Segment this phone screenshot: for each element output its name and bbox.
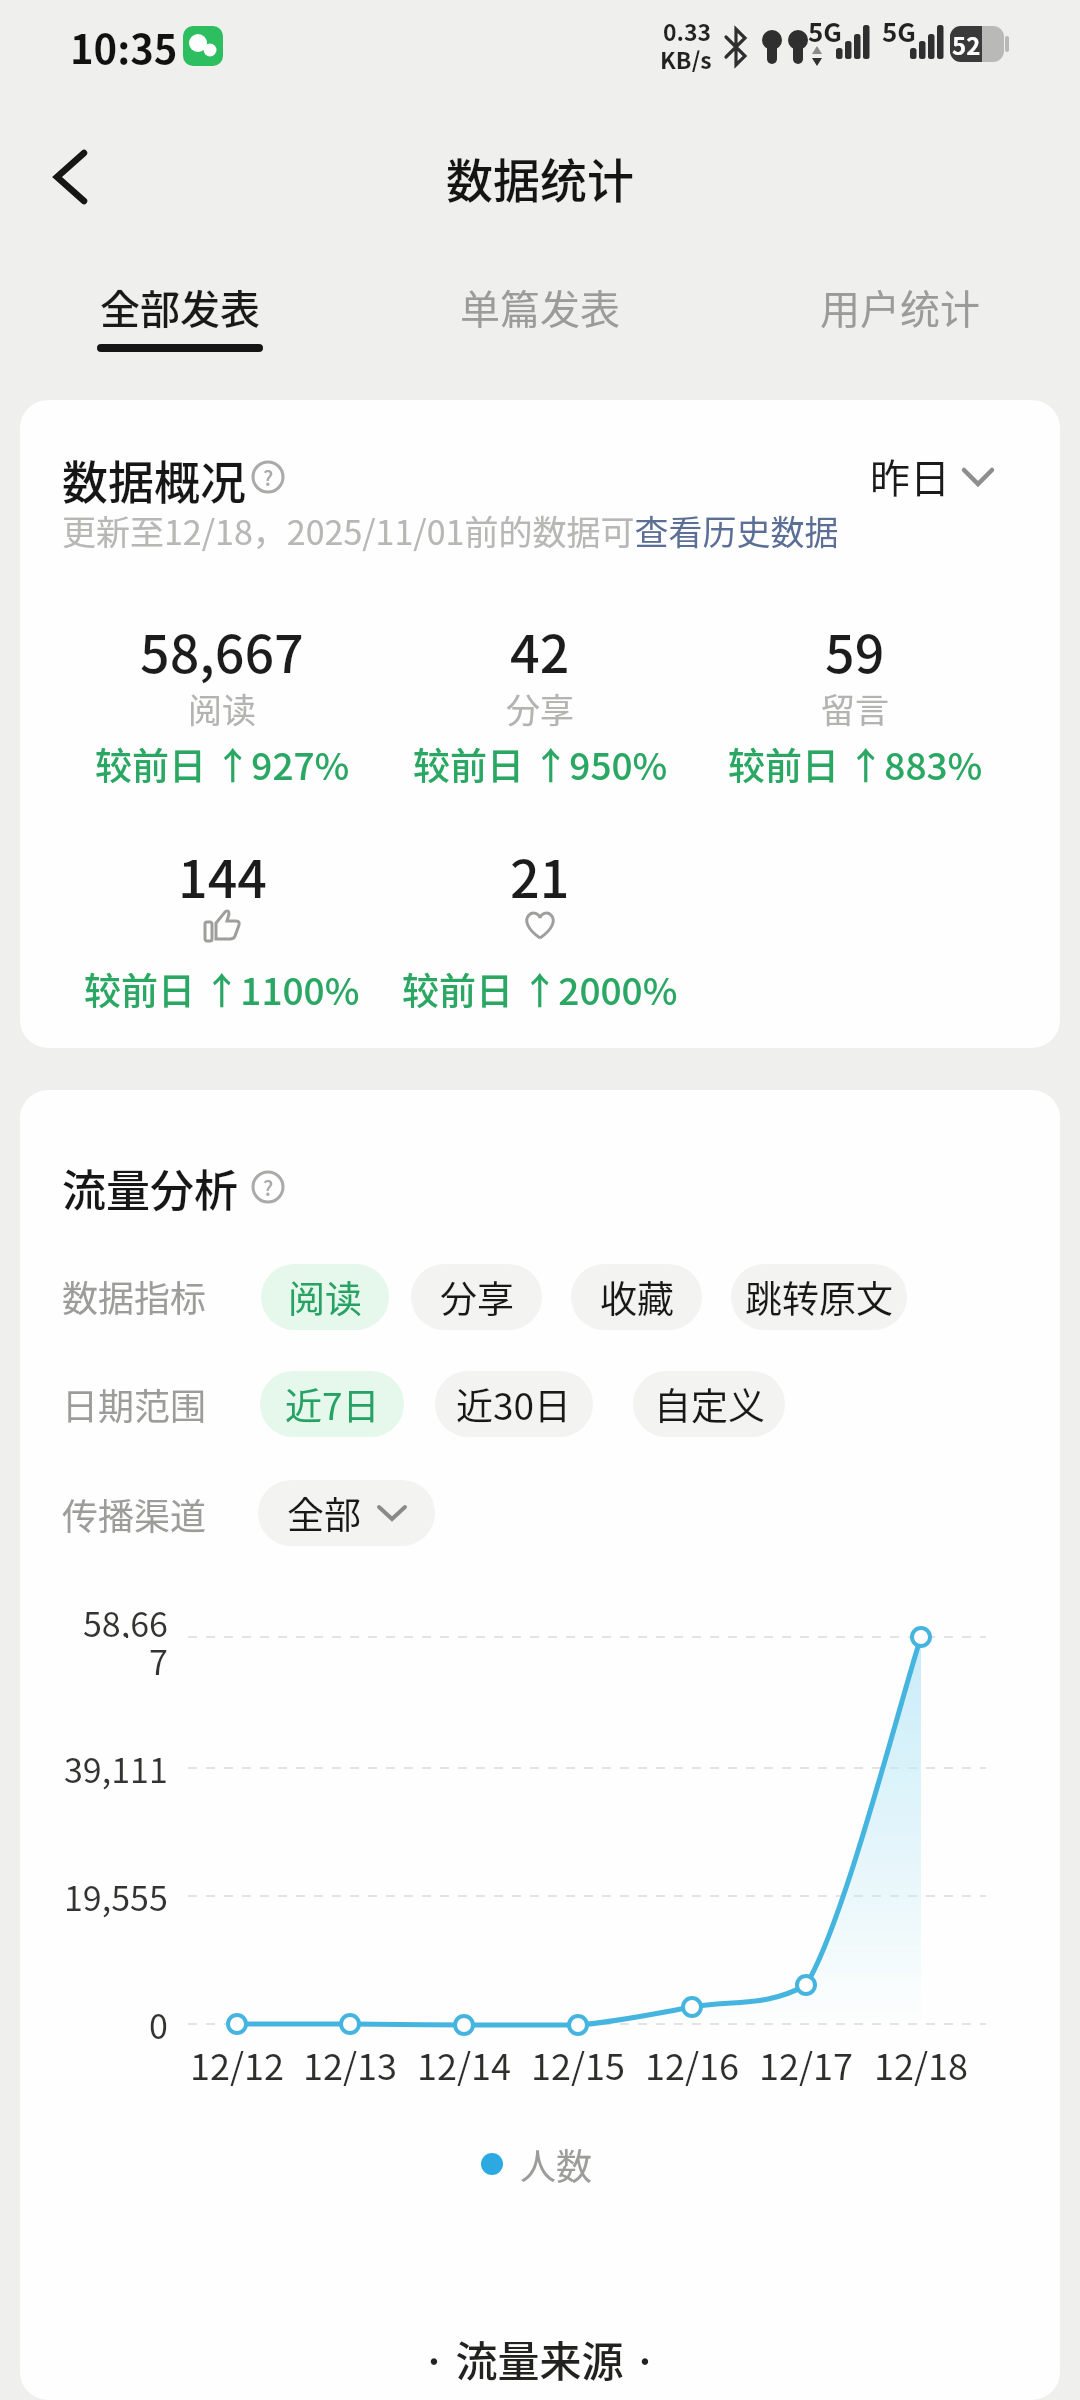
staticText: 52	[952, 27, 981, 62]
staticText: · 流量来源 ·	[422, 2328, 658, 2389]
button[interactable]: 单篇发表	[360, 272, 720, 342]
staticText: 阅读	[188, 684, 256, 733]
staticText: ?	[263, 1172, 274, 1202]
staticText: 较前日 ↑950%	[413, 737, 668, 791]
button[interactable]: 分享	[411, 1264, 542, 1330]
staticText: 日期范围	[62, 1378, 207, 1430]
staticText: 传播渠道	[62, 1488, 207, 1540]
staticText: 近7日	[285, 1377, 380, 1431]
button[interactable]: 近30日	[435, 1371, 593, 1437]
staticText: 近30日	[456, 1377, 572, 1431]
staticText: 12/18	[874, 2038, 969, 2090]
button[interactable]: 昨日	[810, 446, 950, 506]
staticText: 12/17	[759, 2038, 854, 2090]
staticText: 分享	[440, 1270, 514, 1324]
staticText: 数据统计	[446, 143, 634, 211]
staticText: 0.33	[663, 14, 712, 44]
button[interactable]: 全部	[258, 1480, 435, 1546]
staticText: 58,66	[83, 1598, 168, 1638]
staticText: 5G	[882, 12, 916, 48]
button[interactable]: 用户统计	[720, 272, 1080, 342]
button[interactable]: 全部发表	[0, 272, 360, 342]
staticText: 42	[510, 613, 570, 685]
staticText: 留言	[821, 684, 889, 733]
staticText: 自定义	[654, 1377, 765, 1431]
button[interactable]: 跳转原文	[731, 1264, 907, 1330]
staticText: 0	[149, 2000, 168, 2049]
staticText: 12/15	[531, 2038, 626, 2090]
staticText: 数据指标	[62, 1270, 207, 1322]
staticText: 更新至12/18，2025/11/01前的数据可查看历史数据	[62, 506, 839, 555]
staticText: 全部	[287, 1486, 361, 1540]
staticText: 12/14	[417, 2038, 512, 2090]
staticText: 较前日 ↑927%	[95, 737, 350, 791]
staticText: 12/12	[190, 2038, 285, 2090]
staticText: 收藏	[600, 1270, 674, 1324]
staticText: 跳转原文	[745, 1270, 893, 1324]
staticText: 12/13	[303, 2038, 398, 2090]
staticText: 较前日 ↑1100%	[84, 962, 360, 1016]
button[interactable]	[52, 150, 90, 204]
staticText: 58,667	[140, 613, 304, 685]
staticText: 单篇发表	[460, 278, 620, 336]
staticText: 分享	[506, 684, 574, 733]
staticText: 5G	[808, 12, 842, 48]
staticText: 21	[510, 838, 570, 910]
staticText: 59	[825, 613, 885, 685]
staticText: 流量分析	[62, 1156, 238, 1216]
button[interactable]: 自定义	[633, 1371, 785, 1437]
staticText: KB/s	[660, 42, 712, 72]
staticText: 较前日 ↑2000%	[402, 962, 678, 1016]
button[interactable]: 阅读	[261, 1264, 389, 1330]
staticText: 较前日 ↑883%	[728, 737, 983, 791]
staticText: ?	[263, 462, 274, 492]
staticText: 10:35	[70, 18, 178, 70]
staticText: 数据概况	[62, 446, 246, 506]
staticText: 阅读	[288, 1270, 362, 1324]
staticText: 39,111	[64, 1744, 168, 1793]
staticText: 人数	[520, 2138, 593, 2190]
button[interactable]: 近7日	[260, 1371, 404, 1437]
staticText: 19,555	[64, 1872, 168, 1921]
staticText: 用户统计	[820, 278, 980, 336]
button[interactable]: 收藏	[571, 1264, 702, 1330]
staticText: 144	[178, 838, 267, 910]
staticText: 全部发表	[100, 278, 260, 336]
button[interactable]: 更新至12/18，2025/11/01前的数据可查看历史数据	[62, 502, 839, 558]
staticText: 7	[149, 1636, 168, 1676]
staticText: 昨日	[870, 447, 950, 505]
staticText: 12/16	[645, 2038, 740, 2090]
